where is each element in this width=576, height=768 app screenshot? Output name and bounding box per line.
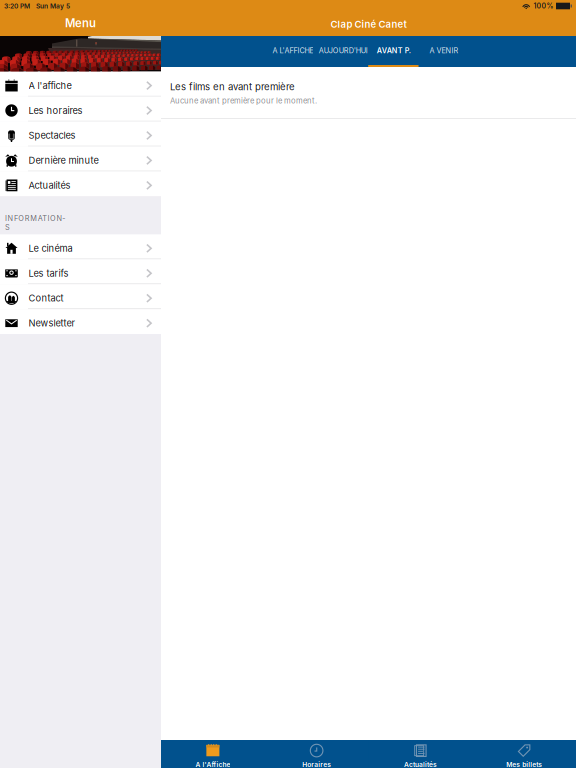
staticText: INFORMATIONS [5, 214, 65, 232]
button[interactable]: A L'AFFICHE [268, 36, 318, 67]
button[interactable]: Les horaires [0, 96, 161, 121]
staticText: AVANT P. [377, 46, 411, 55]
staticText: A VENIR [430, 46, 459, 55]
staticText: Contact [28, 293, 63, 304]
staticText: Les tarifs [28, 268, 68, 279]
button[interactable]: Dernière minute [0, 146, 161, 171]
staticText: Dernière minute [28, 155, 98, 166]
button[interactable]: Mes billets [472, 740, 576, 768]
button[interactable]: Actualités [368, 740, 472, 768]
staticText: Clap Ciné Canet [330, 18, 406, 30]
staticText: A L'AFFICHE [272, 46, 313, 55]
button[interactable]: Contact [0, 284, 161, 309]
staticText: Sun May 5 [36, 2, 70, 10]
button[interactable]: A l'Affiche [161, 740, 265, 768]
button[interactable]: AVANT P. [368, 36, 419, 67]
staticText: Actualités [404, 760, 437, 768]
staticText: A l'Affiche [195, 760, 230, 768]
button[interactable]: A l'affiche [0, 72, 161, 96]
button[interactable]: A VENIR [419, 36, 469, 67]
staticText: Les films en avant première [170, 81, 295, 93]
staticText: Newsletter [28, 317, 75, 329]
button[interactable]: Les tarifs [0, 259, 161, 284]
button[interactable]: AUJOURD'HUI [318, 36, 368, 67]
button[interactable]: Le cinéma [0, 234, 161, 259]
staticText: Les horaires [28, 105, 82, 116]
staticText: Mes billets [506, 760, 542, 768]
staticText: Horaires [302, 760, 331, 768]
staticText: Le cinéma [28, 243, 72, 254]
staticText: Actualités [28, 180, 70, 191]
staticText: Spectacles [28, 130, 75, 141]
button[interactable]: Spectacles [0, 121, 161, 146]
staticText: Menu [65, 16, 96, 30]
staticText: AUJOURD'HUI [319, 46, 368, 55]
staticText: Aucune avant première pour le moment. [170, 96, 317, 105]
staticText: 100% [533, 2, 553, 10]
button[interactable]: Horaires [265, 740, 369, 768]
staticText: 3:20 PM [4, 2, 30, 10]
staticText: A l'affiche [28, 80, 71, 91]
button[interactable]: Newsletter [0, 309, 161, 334]
button[interactable]: Actualités [0, 171, 161, 196]
